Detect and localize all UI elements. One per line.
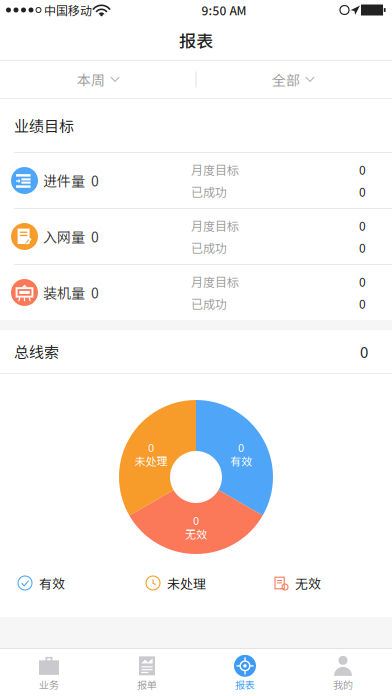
staticText: 月度目标 [191,219,239,232]
staticText: 本周 [77,72,105,87]
staticText: 9:50 AM [201,3,246,17]
staticText: 月度目标 [191,163,239,176]
button[interactable]: 本周 [1,61,196,98]
staticText: 0 [359,275,366,288]
staticText: 0 [238,441,244,453]
button[interactable]: 全部 [196,61,391,98]
staticText: 全部 [272,72,300,87]
staticText: 有效 [39,576,65,590]
staticText: 已成功 [191,185,227,198]
staticText: 0 [359,163,366,176]
button[interactable]: 进件量 [0,153,392,208]
staticText: 总线索 [14,343,59,360]
staticText: 已成功 [191,241,227,254]
staticText: 未处理 [134,454,167,467]
button[interactable]: 总线索 [0,330,392,373]
button[interactable]: 有效 [18,571,118,595]
staticText: 0 [359,185,366,198]
staticText: 0 [85,173,99,188]
button[interactable]: 报表 [196,649,294,696]
button[interactable]: 无效 [274,571,374,595]
staticText: 有效 [230,454,252,467]
staticText: 0 [359,297,366,310]
staticText: 入网量 [43,229,85,244]
staticText: 报单 [137,679,157,690]
staticText: 业绩目标 [14,117,74,134]
staticText: 0 [193,514,199,526]
staticText: 0 [359,241,366,254]
button[interactable]: 入网量 [0,209,392,264]
staticText: 月度目标 [191,275,239,288]
staticText: 无效 [295,576,321,590]
staticText: 报表 [235,679,255,690]
button[interactable]: 报单 [98,649,196,696]
staticText: 报表 [179,30,213,50]
staticText: 0 [359,219,366,232]
button[interactable]: 业务 [0,649,98,696]
staticText: 进件量 [43,173,85,188]
button[interactable]: 未处理 [146,571,246,595]
button[interactable]: 装机量 [0,265,392,320]
staticText: 0 [85,285,99,300]
staticText: 0 [360,343,368,360]
staticText: 已成功 [191,297,227,310]
staticText: 无效 [185,527,207,540]
staticText: 中国移动 [41,3,95,17]
staticText: 业务 [39,679,59,690]
staticText [349,7,350,13]
staticText: 未处理 [167,576,206,590]
staticText: 0 [148,441,154,453]
staticText: 我的 [333,679,353,690]
staticText: 0 [85,229,99,244]
staticText: 装机量 [43,285,85,300]
button[interactable]: 我的 [294,649,392,696]
